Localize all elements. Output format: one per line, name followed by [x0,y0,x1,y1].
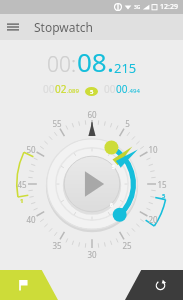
staticText: 20 [148,214,158,225]
staticText: .494 [128,87,140,95]
staticText: 45 [17,179,27,190]
staticText: 02 [55,82,67,96]
staticText: 215 [114,59,137,77]
staticText: .089 [67,87,79,95]
staticText: 12:29 [160,2,178,12]
staticText: 10 [148,144,158,155]
staticText: 00 [104,82,116,96]
staticText: 5 [112,164,115,171]
staticText: Stopwatch [34,19,93,35]
button[interactable]: Start [64,156,120,212]
staticText: 6 [110,202,113,209]
staticText: 15 [157,179,167,190]
staticText: 1 [20,197,24,205]
staticText: 25 [122,240,132,251]
staticText: 00 [47,50,71,79]
staticText: . [107,44,114,79]
staticText: 00 [43,82,55,96]
staticText: 60 [87,109,97,120]
staticText: 35 [52,240,62,251]
staticText: 5 [162,192,166,200]
button[interactable]: Menu [0,14,26,40]
button[interactable]: Reset [125,270,183,300]
staticText: 5 [125,118,130,129]
staticText: 50 [26,144,36,155]
staticText: 40 [26,214,36,225]
staticText: 30 [87,249,97,260]
staticText: 00 [116,82,128,96]
staticText: 08 [77,44,107,79]
staticText: 5 [90,88,94,96]
button[interactable]: Lap [0,270,58,300]
staticText: : [71,50,77,79]
staticText: 55 [52,118,62,129]
staticText: 3G [134,4,141,11]
